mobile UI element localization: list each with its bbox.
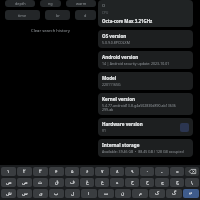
button[interactable]: ح xyxy=(140,178,154,187)
button[interactable]: ج xyxy=(155,178,169,187)
button[interactable]: depth xyxy=(5,0,35,7)
button[interactable]: O xyxy=(98,0,193,27)
staticText: 2201116SG xyxy=(102,82,121,87)
button[interactable]: Model xyxy=(98,72,193,90)
staticText: Clear search history xyxy=(31,28,70,34)
button[interactable]: ۸ xyxy=(110,167,124,176)
staticText: ng xyxy=(48,1,53,6)
staticText: ی xyxy=(39,191,43,196)
staticText: ۶ xyxy=(86,169,89,174)
staticText: ه xyxy=(116,180,119,185)
staticText: 5.0.9.0.8PCOLXM xyxy=(102,40,130,45)
button[interactable]: ن xyxy=(115,189,131,198)
button[interactable]: ب xyxy=(49,189,64,198)
staticText: \ xyxy=(191,180,193,186)
staticText: ش xyxy=(6,191,12,196)
staticText: 5.4.77-android13-8-g4a502830d890-ab13636… xyxy=(102,103,176,112)
button[interactable]: Android version xyxy=(98,51,193,69)
staticText: ۴ xyxy=(55,169,58,174)
staticText: ↵ xyxy=(189,191,193,196)
button[interactable]: ک xyxy=(149,189,165,198)
staticText: ف xyxy=(70,180,75,185)
button[interactable]: ق xyxy=(49,178,64,187)
button[interactable]: ه xyxy=(110,178,124,187)
button[interactable]: گ xyxy=(166,189,182,198)
button[interactable]: Kernel version xyxy=(98,93,193,115)
staticText: ح xyxy=(146,180,149,185)
staticText: چ xyxy=(176,180,179,185)
staticText: depth xyxy=(15,1,26,6)
button[interactable]: ۴ xyxy=(49,167,64,176)
staticText: br xyxy=(56,13,60,18)
staticText: Hardware version xyxy=(102,121,143,127)
button[interactable]: س xyxy=(17,189,32,198)
staticText: d xyxy=(84,13,87,18)
button[interactable]: چ xyxy=(170,178,184,187)
staticText: warm xyxy=(76,1,87,6)
staticText: ۲ xyxy=(23,169,26,174)
button[interactable]: غ xyxy=(80,178,94,187)
button[interactable]: Hardware version xyxy=(98,118,193,136)
button[interactable]: warm xyxy=(66,0,96,7)
staticText: غ xyxy=(86,180,89,185)
staticText: OS version xyxy=(102,33,127,39)
staticText: ۷ xyxy=(101,169,104,174)
button[interactable]: ng xyxy=(40,0,61,7)
button[interactable]: Internal storage xyxy=(98,139,193,157)
button[interactable]: time xyxy=(5,10,40,20)
button[interactable]: ض xyxy=(1,178,16,187)
button[interactable]: خ xyxy=(125,178,139,187)
staticText: Octa-core Max 3.21GHz xyxy=(102,18,153,24)
staticText: ع xyxy=(101,180,104,185)
button[interactable]: - xyxy=(155,167,169,176)
button[interactable]: ۳ xyxy=(33,167,48,176)
button[interactable]: Backspace xyxy=(185,167,199,176)
staticText: ل xyxy=(71,191,75,196)
button[interactable]: ۵ xyxy=(65,167,79,176)
staticText: Internal storage xyxy=(102,142,140,148)
button[interactable]: Clear search history xyxy=(27,27,74,35)
staticText: ۳ xyxy=(39,169,42,174)
staticText: ب xyxy=(54,191,59,196)
staticText: ا xyxy=(88,191,90,196)
button[interactable]: ۱ xyxy=(1,167,16,176)
button[interactable]: d xyxy=(75,10,96,20)
staticText: ث xyxy=(38,180,43,185)
button[interactable]: ص xyxy=(17,178,32,187)
staticText: ۵ xyxy=(71,169,74,174)
staticText: ۹ xyxy=(131,169,134,174)
staticText: ص xyxy=(22,180,28,185)
staticText: V1 xyxy=(102,128,107,133)
staticText: ۸ xyxy=(116,169,119,174)
button[interactable]: ی xyxy=(33,189,48,198)
button[interactable]: \ xyxy=(185,178,199,187)
button[interactable]: ف xyxy=(65,178,79,187)
staticText: ض xyxy=(6,180,12,185)
staticText: = xyxy=(176,169,179,175)
button[interactable]: = xyxy=(170,167,184,176)
staticText: ۰ xyxy=(146,169,149,174)
staticText: Available: 39.46 GB • 88.45 GB / 128 GB … xyxy=(102,149,184,154)
staticText: م xyxy=(139,191,142,196)
button[interactable]: م xyxy=(132,189,148,198)
staticText: CPU xyxy=(102,11,109,15)
button[interactable]: ۹ xyxy=(125,167,139,176)
button[interactable]: ۷ xyxy=(95,167,109,176)
staticText: ک xyxy=(155,191,160,196)
staticText: ت xyxy=(104,191,109,196)
button[interactable]: ۰ xyxy=(140,167,154,176)
staticText: خ xyxy=(131,180,134,185)
staticText: Model xyxy=(102,75,117,81)
button[interactable]: ش xyxy=(1,189,16,198)
button[interactable]: ل xyxy=(65,189,80,198)
button[interactable]: ۲ xyxy=(17,167,32,176)
staticText: time xyxy=(18,13,27,18)
button[interactable]: ۶ xyxy=(80,167,94,176)
button[interactable]: ث xyxy=(33,178,48,187)
button[interactable]: ع xyxy=(95,178,109,187)
button[interactable]: br xyxy=(45,10,70,20)
button[interactable]: Enter xyxy=(183,189,199,198)
button[interactable]: ت xyxy=(98,189,114,198)
button[interactable]: OS version xyxy=(98,30,193,48)
button[interactable]: ا xyxy=(81,189,97,198)
